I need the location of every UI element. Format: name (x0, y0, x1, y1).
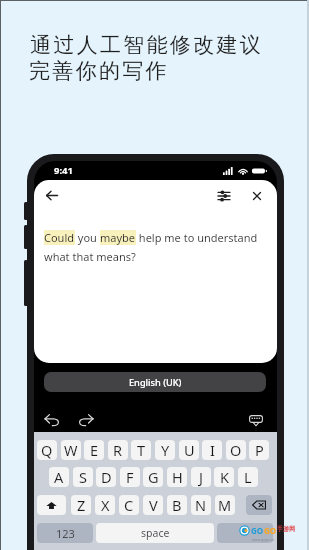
staticText: V (149, 495, 158, 515)
button[interactable]: English (UK) (44, 372, 266, 392)
button[interactable]: T (131, 440, 151, 460)
staticText: space (141, 526, 170, 540)
staticText: T (137, 440, 146, 460)
staticText: C (124, 495, 134, 515)
button[interactable]: I (202, 440, 222, 460)
staticText: 通过人工智能修改建议 (29, 32, 262, 58)
button[interactable]: Return (217, 523, 273, 543)
button[interactable]: Shift (37, 495, 66, 515)
staticText: F (126, 467, 134, 487)
staticText: you (75, 230, 100, 245)
button[interactable]: F (120, 467, 140, 487)
button[interactable]: H (167, 467, 187, 487)
button[interactable]: 123 (37, 523, 93, 543)
staticText: B (172, 495, 182, 515)
staticText: 123 (56, 526, 75, 541)
staticText: P (255, 440, 264, 460)
button[interactable]: Redo (75, 410, 97, 430)
staticText: U (184, 440, 195, 460)
button[interactable]: N (191, 495, 211, 515)
button[interactable]: W (61, 440, 81, 460)
staticText: A (54, 467, 64, 487)
button[interactable]: Y (155, 440, 175, 460)
button[interactable]: D (96, 467, 116, 487)
staticText: Q (41, 440, 53, 460)
staticText: 完善你的写作 (29, 58, 169, 84)
button[interactable]: A (49, 467, 69, 487)
button[interactable]: E (84, 440, 104, 460)
staticText: Y (161, 440, 170, 460)
staticText: H (172, 467, 183, 487)
button[interactable]: U (179, 440, 199, 460)
staticText: M (218, 495, 232, 515)
staticText: N (195, 495, 207, 515)
staticText: E (90, 440, 99, 460)
staticText: what that means? (44, 249, 136, 264)
staticText: K (220, 467, 229, 487)
staticText: R (113, 440, 123, 460)
staticText: G (148, 467, 159, 487)
staticText: www.gogo.cn (252, 537, 275, 542)
staticText: S (79, 467, 87, 487)
button[interactable]: C (119, 495, 139, 515)
button[interactable]: Back (41, 185, 62, 206)
button[interactable]: Undo (40, 410, 62, 430)
button[interactable]: O (226, 440, 246, 460)
staticText: 手游网 (277, 525, 295, 533)
button[interactable]: J (191, 467, 211, 487)
staticText: D (101, 467, 112, 487)
button[interactable]: S (73, 467, 93, 487)
staticText: Could (44, 230, 75, 245)
staticText: X (101, 495, 110, 515)
staticText: maybe (100, 230, 136, 245)
staticText: Z (77, 495, 86, 515)
button[interactable]: V (143, 495, 163, 515)
staticText: 9:41 (54, 164, 73, 177)
button[interactable]: G (143, 467, 163, 487)
button[interactable]: L (238, 467, 258, 487)
button[interactable]: Q (37, 440, 57, 460)
staticText: O (230, 440, 242, 460)
staticText: I (210, 440, 215, 460)
button[interactable]: space (96, 523, 214, 543)
staticText: W (64, 440, 78, 460)
staticText: English (UK) (129, 376, 182, 389)
button[interactable]: Z (71, 495, 91, 515)
button[interactable]: Backspace (246, 495, 272, 515)
button[interactable]: P (249, 440, 269, 460)
button[interactable]: X (95, 495, 115, 515)
staticText: J (199, 467, 203, 487)
staticText: help me to understand (136, 230, 258, 245)
button[interactable]: Hide keyboard (245, 410, 267, 430)
button[interactable]: Close (246, 185, 267, 206)
button[interactable]: Adjust suggestions (213, 185, 234, 206)
button[interactable]: B (167, 495, 187, 515)
staticText: GO (251, 525, 264, 536)
staticText: L (244, 467, 252, 487)
button[interactable]: R (108, 440, 128, 460)
button[interactable]: M (215, 495, 235, 515)
staticText: GO (264, 525, 277, 536)
button[interactable]: K (214, 467, 234, 487)
